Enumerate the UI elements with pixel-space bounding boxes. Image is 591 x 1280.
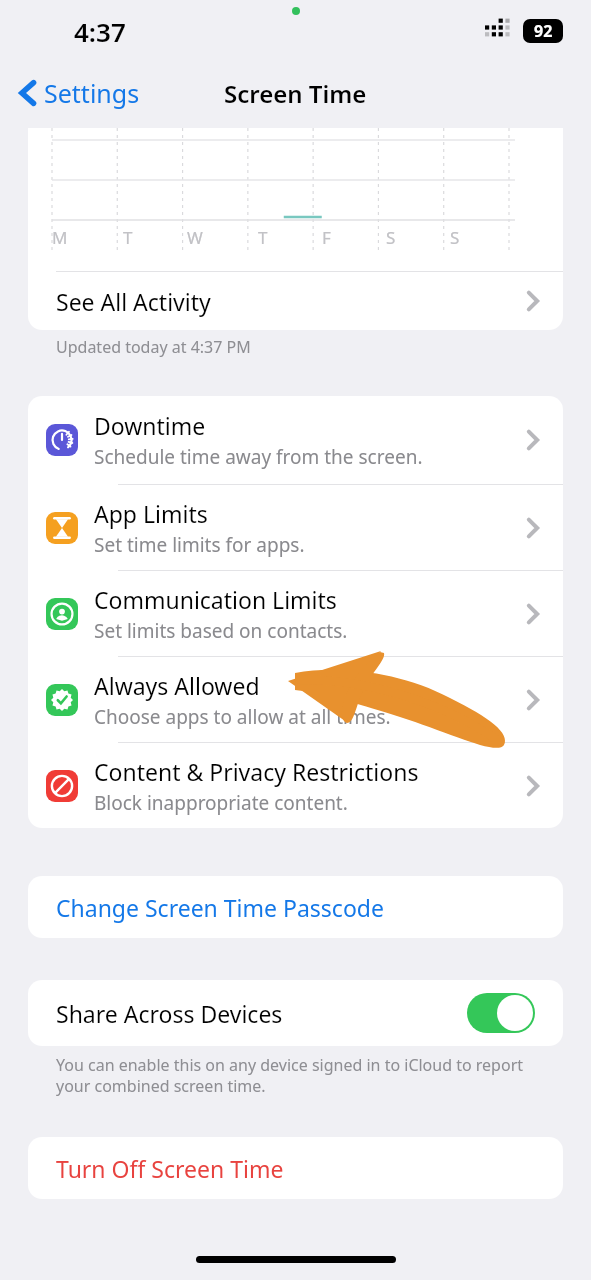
other: Share Across Devices toggle, on [467,993,535,1033]
staticText: W [187,226,203,249]
button[interactable]: Settings [14,70,146,116]
staticText: S [386,226,396,249]
staticText: Screen Time [224,77,367,110]
button[interactable]: Communication Limits [28,571,563,656]
button[interactable]: Downtime [28,396,563,484]
staticText: F [322,226,331,249]
staticText: M [52,226,68,249]
staticText: Downtime [94,410,206,441]
staticText: 92 [534,20,553,42]
staticText: T [123,226,133,249]
staticText: Communication Limits [94,584,337,615]
button[interactable]: Share Across Devices [28,980,563,1046]
staticText: See All Activity [56,286,211,317]
staticText: 4:37 [74,14,126,49]
staticText: Block inappropriate content. [94,790,348,816]
staticText: Content & Privacy Restrictions [94,756,419,787]
staticText: Share Across Devices [56,998,283,1029]
staticText: Settings [44,76,140,110]
staticText: Choose apps to allow at all times. [94,704,391,730]
staticText: Set limits based on contacts. [94,618,348,644]
button[interactable]: Content & Privacy Restrictions [28,743,563,828]
staticText: You can enable this on any device signed… [56,1054,551,1097]
staticText: App Limits [94,498,208,529]
button[interactable]: App Limits [28,485,563,570]
staticText: Change Screen Time Passcode [56,892,384,923]
staticText: Schedule time away from the screen. [94,444,423,470]
staticText: S [450,226,460,249]
button[interactable]: Change Screen Time Passcode [28,876,563,938]
staticText: T [258,226,268,249]
staticText: Set time limits for apps. [94,532,305,558]
staticText: Turn Off Screen Time [56,1153,284,1184]
button[interactable]: Always Allowed [28,657,563,742]
button[interactable]: Turn Off Screen Time [28,1137,563,1199]
staticText: Always Allowed [94,670,260,701]
staticText: Updated today at 4:37 PM [56,336,251,358]
button[interactable]: See All Activity [28,272,563,330]
